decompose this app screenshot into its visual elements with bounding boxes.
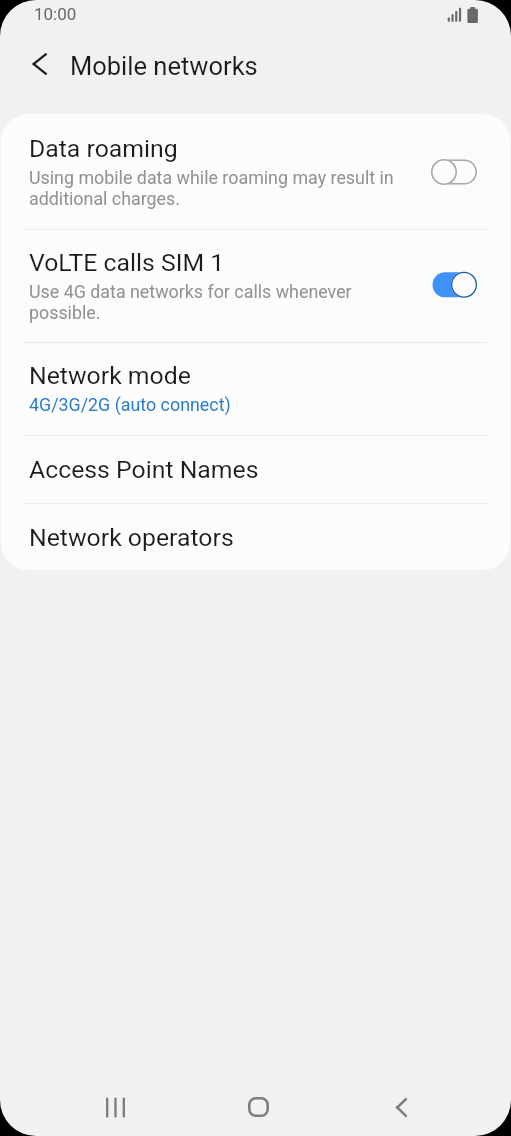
button[interactable]: Data roaming <box>1 114 510 229</box>
button[interactable]: Switch on <box>431 272 477 300</box>
staticText: 4G/3G/2G (auto connect) <box>29 394 231 415</box>
button[interactable]: Switch off <box>431 158 477 186</box>
staticText: 10:00 <box>34 4 77 24</box>
button[interactable]: VoLTE calls SIM 1 <box>1 230 510 342</box>
button[interactable]: Access Point Names <box>1 436 510 503</box>
staticText: Data roaming <box>29 134 178 163</box>
staticText: Use 4G data networks for calls whenever … <box>29 281 352 323</box>
button[interactable]: Recent apps <box>87 1079 143 1135</box>
staticText: Using mobile data while roaming may resu… <box>29 167 394 209</box>
button[interactable]: Home <box>230 1079 286 1135</box>
staticText: Network mode <box>29 361 191 390</box>
button[interactable]: Network operators <box>1 504 510 570</box>
staticText: Network operators <box>29 523 234 552</box>
button[interactable]: Back <box>373 1079 429 1135</box>
staticText: VoLTE calls SIM 1 <box>29 248 225 277</box>
button[interactable]: Network mode <box>1 343 510 435</box>
staticText: Access Point Names <box>29 455 259 484</box>
staticText: Mobile networks <box>70 51 258 81</box>
button[interactable]: Navigate up <box>19 44 59 84</box>
